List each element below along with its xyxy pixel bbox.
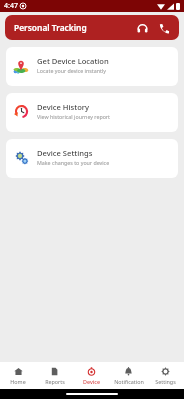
staticText: Home <box>10 378 26 385</box>
staticText: View historical journey report <box>37 113 110 120</box>
staticText: Personal Tracking <box>14 22 87 33</box>
staticText: Locate your device instantly <box>37 67 106 74</box>
button[interactable]: Personal Tracking <box>5 15 179 40</box>
button[interactable]: Home <box>0 362 36 389</box>
staticText: 4:47 <box>4 1 18 11</box>
button[interactable]: Device Settings <box>6 139 178 178</box>
staticText: Device History <box>37 102 90 112</box>
staticText: Settings <box>155 378 176 385</box>
button[interactable]: Notification <box>110 362 147 389</box>
button[interactable]: Settings <box>147 362 184 389</box>
staticText: Reports <box>45 378 65 385</box>
staticText: Make changes to your device <box>37 159 110 166</box>
button[interactable]: Get Device Location <box>6 47 178 86</box>
button[interactable]: Call <box>154 18 174 38</box>
button[interactable]: Device History <box>6 93 178 132</box>
staticText: Notification <box>114 378 144 385</box>
button[interactable]: Reports <box>36 362 73 389</box>
button[interactable]: Support <box>132 18 152 38</box>
staticText: Device Settings <box>37 148 93 158</box>
staticText: Get Device Location <box>37 56 109 66</box>
button[interactable]: Device <box>73 362 110 389</box>
staticText: Device <box>83 378 100 385</box>
